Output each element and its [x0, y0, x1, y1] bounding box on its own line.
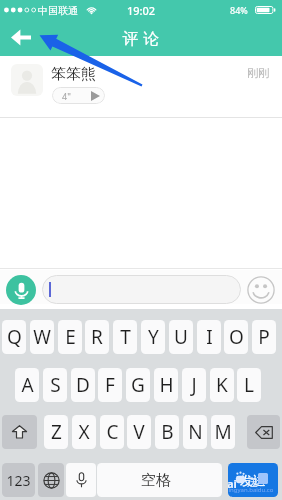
button[interactable]: P [252, 320, 276, 354]
staticText: 刚刚 [247, 66, 269, 80]
staticText: G [131, 372, 145, 398]
staticText: V [133, 419, 145, 445]
button[interactable]: U [169, 320, 193, 354]
staticText: T [120, 324, 131, 350]
button[interactable]: S [43, 368, 67, 402]
staticText: Y [148, 324, 159, 350]
button[interactable]: W [30, 320, 54, 354]
button[interactable]: Voice input [66, 463, 96, 497]
button[interactable]: Shift [2, 415, 37, 449]
staticText: S [50, 372, 61, 398]
button[interactable]: M [211, 415, 235, 449]
button[interactable]: R [85, 320, 109, 354]
staticText: Z [51, 419, 62, 445]
button[interactable]: Q [2, 320, 26, 354]
button[interactable]: F [98, 368, 122, 402]
button[interactable]: 发送 [228, 463, 278, 497]
staticText: 4" [62, 90, 71, 102]
button[interactable]: O [224, 320, 248, 354]
staticText: P [258, 324, 270, 350]
button[interactable]: Record voice message [6, 275, 36, 305]
staticText: O [229, 324, 244, 350]
button[interactable]: Back [1, 21, 40, 54]
staticText: 19:02 [127, 3, 156, 18]
staticText: ai [228, 476, 237, 491]
button[interactable]: X [72, 415, 96, 449]
button[interactable]: E [58, 320, 82, 354]
staticText: Q [7, 324, 22, 350]
button[interactable]: A [15, 368, 39, 402]
button[interactable]: Play voice message, 4 seconds [52, 87, 105, 104]
button[interactable]: G [126, 368, 150, 402]
staticText: E [65, 324, 76, 350]
button[interactable]: T [113, 320, 137, 354]
staticText: X [78, 419, 90, 445]
staticText: 评论 [120, 29, 162, 49]
staticText: 送 [247, 475, 258, 489]
button[interactable]: J [182, 368, 206, 402]
staticText: U [174, 324, 188, 350]
button[interactable]: N [183, 415, 207, 449]
button[interactable]: B [155, 415, 179, 449]
button[interactable]: Z [44, 415, 68, 449]
button[interactable]: 空格 [97, 463, 222, 497]
staticText: 中国联通 [38, 4, 78, 17]
button[interactable]: Y [141, 320, 165, 354]
staticText: A [21, 372, 34, 398]
staticText: F [105, 372, 115, 398]
button[interactable]: 123 [2, 463, 35, 497]
staticText: I [206, 324, 213, 350]
staticText: 84% [230, 4, 248, 16]
staticText: 笨笨熊 [51, 65, 96, 84]
staticText: jingyan.baidu.com [228, 486, 277, 497]
button[interactable]: Write a comment [42, 275, 241, 304]
staticText: M [214, 419, 232, 445]
staticText: N [188, 419, 203, 445]
button[interactable]: Emoji [246, 275, 275, 304]
staticText: D [76, 372, 90, 398]
button[interactable]: Switch keyboard [38, 463, 64, 497]
button[interactable]: Backspace [247, 415, 280, 449]
button[interactable]: K [210, 368, 234, 402]
staticText: 空格 [141, 471, 171, 490]
button[interactable]: I [197, 320, 221, 354]
button[interactable]: C [100, 415, 124, 449]
staticText: W [33, 324, 51, 350]
staticText: B [161, 419, 174, 445]
staticText: C [106, 419, 119, 445]
button[interactable]: V [127, 415, 151, 449]
button[interactable]: D [71, 368, 95, 402]
button[interactable]: L [237, 368, 261, 402]
staticText: R [91, 324, 103, 350]
button[interactable]: H [154, 368, 178, 402]
staticText: K [216, 372, 228, 398]
button[interactable] [0, 56, 282, 117]
staticText: 发送 [240, 472, 266, 488]
staticText: J [191, 372, 197, 398]
staticText: H [159, 372, 174, 398]
staticText: 123 [6, 471, 31, 490]
staticText: L [244, 372, 254, 398]
